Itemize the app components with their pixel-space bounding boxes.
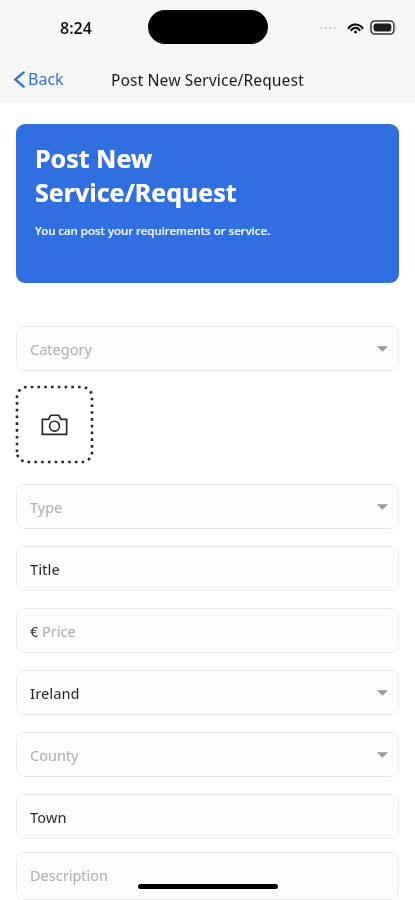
button[interactable]: Description <box>16 852 399 900</box>
staticText: You can post your requirements or servic… <box>35 223 271 239</box>
button[interactable]: Type <box>16 484 399 529</box>
button[interactable]: Town <box>16 794 399 839</box>
button[interactable]: Back <box>11 64 67 94</box>
button[interactable]: Post New <box>16 124 399 283</box>
staticText: Ireland <box>30 683 80 703</box>
staticText: Service/Request <box>35 175 237 209</box>
staticText: County <box>30 745 79 765</box>
button[interactable]: Category <box>16 326 399 371</box>
staticText: Description <box>30 865 109 885</box>
staticText: Town <box>30 807 67 827</box>
staticText: Post New Service/Request <box>111 69 304 90</box>
staticText: € Price <box>30 621 76 641</box>
staticText: Title <box>30 559 60 579</box>
staticText: Post New <box>35 141 153 175</box>
button[interactable]: € Price <box>16 608 399 653</box>
staticText: Back <box>28 68 64 90</box>
button[interactable]: Ireland <box>16 670 399 715</box>
button[interactable]: Title <box>16 546 399 591</box>
staticText: 8:24 <box>60 17 92 39</box>
button[interactable]: Add photo <box>17 387 92 462</box>
staticText: Type <box>30 497 63 517</box>
staticText: Category <box>30 339 92 359</box>
button[interactable]: County <box>16 732 399 777</box>
